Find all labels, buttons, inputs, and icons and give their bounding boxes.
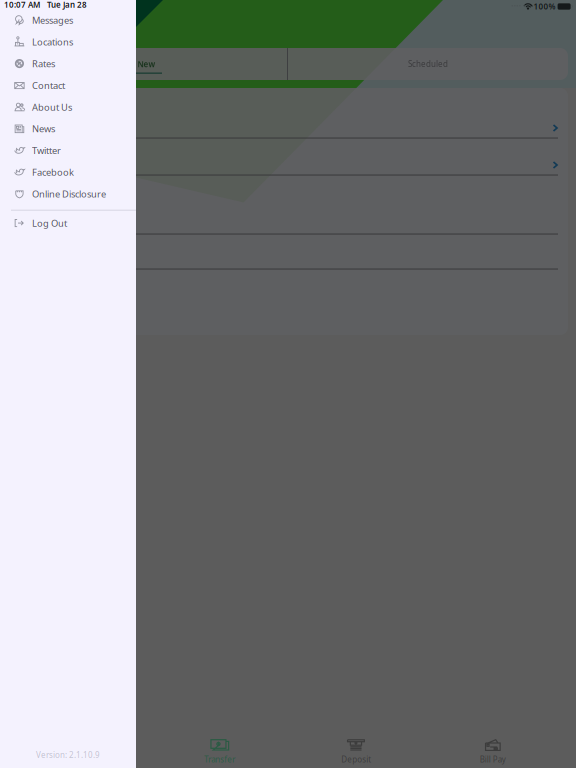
button[interactable]: Open item	[6, 269, 568, 335]
staticText: Transfer	[204, 754, 235, 765]
button[interactable]: Online Disclosure	[0, 183, 136, 205]
staticText: Twitter	[32, 144, 61, 157]
button[interactable]: Open item	[6, 138, 568, 174]
button[interactable]: About Us	[0, 96, 136, 118]
button[interactable]: Transfer	[151, 722, 288, 768]
staticText: 100%	[534, 1, 556, 12]
button[interactable]: Open item	[6, 234, 568, 268]
staticText: New	[137, 59, 155, 69]
button[interactable]: News	[0, 118, 136, 140]
staticText: Rates	[32, 57, 55, 70]
staticText: 10:07 AM	[4, 0, 40, 10]
staticText: News	[32, 123, 55, 135]
button[interactable]: Contact	[0, 74, 136, 96]
button[interactable]: Bill Pay	[424, 722, 561, 768]
button[interactable]: Deposit	[288, 722, 424, 768]
staticText: Accounts	[66, 754, 101, 765]
button[interactable]: Log Out	[0, 212, 136, 234]
staticText: Tue Jan 28	[47, 0, 87, 10]
staticText: About Us	[32, 101, 72, 113]
staticText: Bill Pay	[480, 754, 506, 765]
button[interactable]: Rates	[0, 53, 136, 74]
button[interactable]: Open item	[6, 87, 568, 137]
button[interactable]: Locations	[0, 31, 136, 53]
button[interactable]: Accounts	[15, 722, 151, 768]
staticText: Messages	[32, 14, 73, 26]
staticText: Online Disclosure	[32, 188, 106, 200]
button[interactable]: Facebook	[0, 161, 136, 183]
staticText: Facebook	[32, 166, 74, 178]
staticText: Contact	[32, 79, 65, 92]
button[interactable]: Twitter	[0, 140, 136, 161]
button[interactable]: Scheduled	[288, 48, 568, 80]
staticText: Deposit	[341, 754, 371, 765]
staticText: Log Out	[32, 217, 67, 229]
button[interactable]: Messages	[0, 9, 136, 31]
staticText: Scheduled	[408, 59, 448, 69]
staticText: Version: 2.1.10.9	[36, 750, 100, 760]
button[interactable]: New	[6, 48, 287, 80]
staticText: Locations	[32, 36, 73, 48]
button[interactable]: Open item	[6, 175, 568, 233]
